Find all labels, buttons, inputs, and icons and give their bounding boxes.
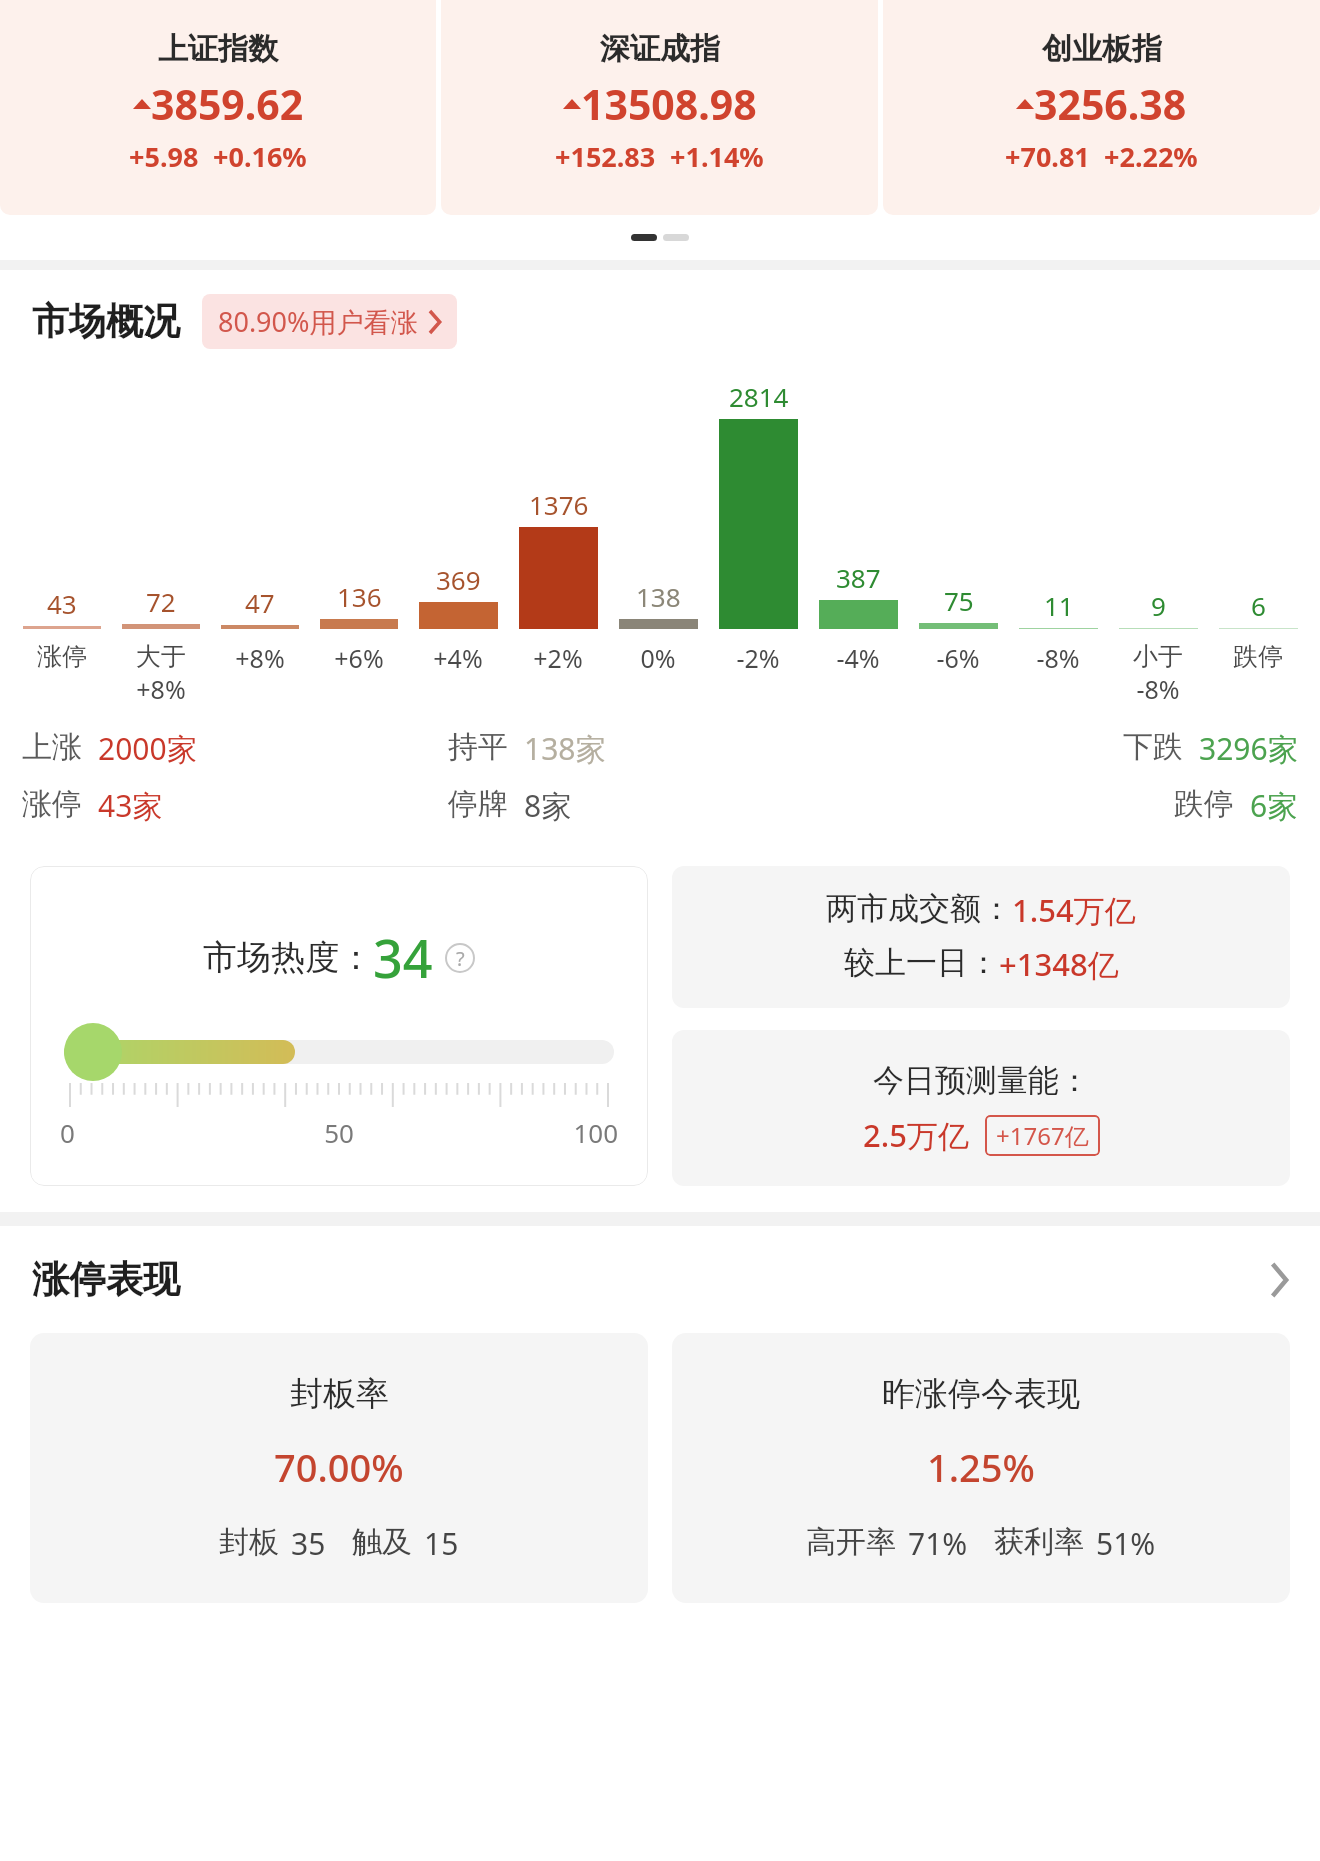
staticText: 47 (245, 585, 275, 620)
staticText: 2000家 (98, 728, 197, 769)
staticText: 75 (944, 583, 974, 618)
staticText: 100 (432, 1115, 618, 1150)
staticText: 51% (1096, 1523, 1156, 1564)
staticText: 9 (1151, 588, 1166, 623)
staticText: 50 (246, 1115, 432, 1150)
staticText: +8% (235, 641, 285, 675)
staticText: 大于 (136, 641, 186, 672)
staticText: 8家 (524, 785, 572, 826)
staticText: 138家 (524, 728, 606, 769)
staticText: 较上一日： (844, 943, 999, 982)
staticText: 0% (640, 641, 676, 675)
staticText: 上证指数 (158, 30, 278, 68)
staticText: 369 (436, 562, 481, 597)
button[interactable]: 涨停表现 (0, 1256, 1320, 1303)
button[interactable]: 帮助 (445, 943, 475, 973)
button[interactable]: 今日预测量能： (672, 1030, 1290, 1186)
staticText: +2% (533, 641, 583, 675)
staticText: +1767亿 (996, 1119, 1089, 1152)
staticText: 封板 (219, 1523, 279, 1561)
button[interactable]: 43 (14, 367, 109, 672)
staticText: 涨停 (22, 785, 82, 823)
staticText: 13508.98 (581, 76, 757, 132)
staticText: 小于 (1133, 641, 1183, 672)
button[interactable]: 80.90%用户看涨 (202, 294, 457, 349)
button[interactable]: 封板率 (30, 1333, 648, 1603)
staticText: 387 (836, 560, 881, 595)
button[interactable]: 昨涨停今表现 (672, 1333, 1290, 1603)
button[interactable]: 136 (311, 367, 406, 675)
staticText: +0.16% (213, 138, 307, 175)
staticText: 0 (60, 1115, 246, 1150)
staticText: 6 (1251, 588, 1266, 623)
button[interactable]: 369 (410, 367, 506, 675)
button[interactable]: 72 (113, 367, 208, 706)
staticText: 34 (373, 922, 433, 993)
staticText: 15 (424, 1523, 459, 1564)
button[interactable]: 2814 (710, 367, 806, 675)
staticText: 上涨 (22, 728, 82, 766)
staticText: +6% (334, 641, 384, 675)
button[interactable]: 9 (1110, 367, 1206, 706)
staticText: 71% (908, 1523, 968, 1564)
staticText: ? (456, 945, 465, 972)
staticText: 涨停表现 (32, 1256, 180, 1303)
staticText: 136 (337, 579, 382, 614)
staticText: 涨停 (37, 641, 87, 672)
staticText: -8% (1036, 641, 1080, 675)
staticText: 跌停 (1174, 785, 1234, 823)
staticText: 6家 (1250, 785, 1298, 826)
staticText: 高开率 (806, 1523, 896, 1561)
button[interactable]: 两市成交额： (672, 866, 1290, 1008)
other: 更多 (1270, 1264, 1288, 1296)
staticText: 80.90%用户看涨 (218, 303, 418, 340)
staticText: 两市成交额： (826, 889, 1012, 928)
staticText: 触及 (352, 1523, 412, 1561)
staticText: +1348亿 (999, 943, 1119, 985)
staticText: 3256.38 (1034, 76, 1187, 132)
staticText: +8% (136, 672, 186, 706)
staticText: 1.25% (927, 1441, 1035, 1493)
staticText: 72 (146, 584, 176, 619)
staticText: 2814 (729, 379, 789, 414)
button[interactable]: 上证指数 (0, 0, 436, 215)
staticText: 昨涨停今表现 (882, 1373, 1080, 1415)
staticText: 获利率 (994, 1523, 1084, 1561)
staticText: -4% (836, 641, 880, 675)
staticText: +70.81 (1005, 138, 1090, 175)
staticText: 市场热度： (203, 936, 373, 979)
staticText: 1.54万亿 (1012, 889, 1136, 931)
staticText: 70.00% (274, 1441, 404, 1493)
staticText: 停牌 (448, 785, 508, 823)
staticText: 11 (1044, 588, 1074, 623)
button[interactable]: 1376 (510, 367, 606, 675)
button[interactable]: 75 (910, 367, 1006, 675)
staticText: 跌停 (1233, 641, 1283, 672)
button[interactable]: 深证成指 (441, 0, 878, 215)
button[interactable]: 市场热度： (30, 866, 648, 1186)
staticText: 封板率 (290, 1373, 389, 1415)
staticText: 138 (636, 579, 681, 614)
button[interactable]: 138 (610, 367, 706, 675)
staticText: 1376 (529, 487, 589, 522)
staticText: 创业板指 (1042, 30, 1162, 68)
staticText: 35 (291, 1523, 326, 1564)
staticText: 43家 (98, 785, 163, 826)
staticText: 3296家 (1199, 728, 1298, 769)
staticText: +152.83 (555, 138, 656, 175)
staticText: 3859.62 (151, 76, 304, 132)
staticText: 市场概况 (32, 298, 180, 345)
staticText: +1.14% (670, 138, 764, 175)
button[interactable]: 387 (810, 367, 906, 675)
button[interactable]: 6 (1210, 367, 1306, 672)
staticText: 43 (47, 586, 77, 621)
button[interactable]: 创业板指 (883, 0, 1320, 215)
staticText: -8% (1136, 672, 1180, 706)
button[interactable]: 47 (212, 367, 307, 675)
button[interactable]: 11 (1010, 367, 1106, 675)
staticText: +5.98 (129, 138, 199, 175)
staticText: 持平 (448, 728, 508, 766)
staticText: -6% (936, 641, 980, 675)
staticText: 2.5万亿 (863, 1114, 969, 1156)
staticText: 深证成指 (600, 30, 720, 68)
